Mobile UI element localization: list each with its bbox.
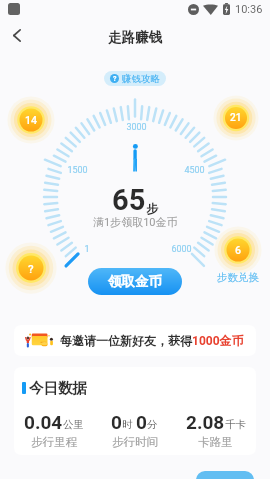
button[interactable]: Coin 6 [214,226,262,274]
staticText: 1000金币 [192,333,244,348]
staticText: 1 [84,244,90,255]
button[interactable]: Coin 14 [7,96,55,144]
staticText: 时 [122,418,133,431]
staticText: 步行时间 [112,435,158,449]
staticText: 6000 [171,244,192,255]
staticText: 领取金币 [108,273,162,290]
button[interactable]: Coin 21 [213,95,259,141]
staticText: 卡路里 [198,435,233,449]
staticText: 今日数据 [29,379,87,397]
staticText: 1500 [67,165,88,176]
button[interactable]: 步数兑换 [217,271,259,284]
staticText: ? [28,262,34,275]
staticText: 0 [111,411,122,433]
staticText: 步 [146,201,158,216]
button[interactable]: ? [104,71,166,86]
staticText: 14 [25,114,38,126]
staticText: 公里 [63,418,84,431]
button[interactable]: Back [3,22,30,49]
button[interactable]: 每邀请一位新好友，获得 [14,325,256,356]
staticText: 0.04 [24,411,63,433]
staticText: ? [113,75,117,83]
staticText: 满1步领取10金币 [93,215,178,229]
staticText: 千卡 [225,418,246,431]
staticText: 6 [235,244,242,256]
staticText: 21 [230,112,242,124]
staticText: 0 [136,411,147,433]
staticText: 10:36 [235,3,263,16]
staticText: 分 [147,418,158,431]
staticText: 步行里程 [31,435,77,449]
staticText: 3000 [126,122,147,133]
staticText: 65 [112,183,146,217]
staticText: 走路赚钱 [108,29,162,46]
staticText: 每邀请一位新好友，获得 [60,333,192,348]
button[interactable]: 领取金币 [88,268,182,295]
staticText: 4500 [184,165,205,176]
staticText: 2.08 [186,411,225,433]
button[interactable]: Coin ? [5,242,57,294]
staticText: 赚钱攻略 [122,73,160,85]
